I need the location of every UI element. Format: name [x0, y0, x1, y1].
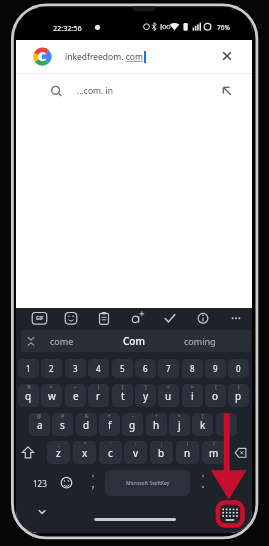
button[interactable]: x	[73, 441, 96, 464]
staticText: g	[129, 418, 136, 432]
button[interactable]: 4	[88, 359, 109, 378]
button[interactable]: r	[88, 384, 109, 407]
staticText: 9	[213, 363, 218, 374]
staticText: ]	[145, 384, 147, 390]
staticText: &	[85, 413, 89, 419]
button[interactable]	[60, 307, 82, 329]
button[interactable]: v	[124, 441, 147, 464]
button[interactable]: c	[99, 441, 122, 464]
button[interactable]: l	[216, 413, 237, 436]
button[interactable]: g	[122, 413, 143, 436]
button[interactable]: ...com. in	[16, 74, 252, 107]
staticText: *	[108, 413, 111, 419]
button[interactable]: 5	[112, 359, 133, 378]
staticText: Com	[123, 334, 145, 348]
button[interactable]: 9	[205, 359, 226, 378]
button[interactable]	[225, 307, 247, 329]
staticText: ^	[50, 384, 53, 390]
staticText: ;	[161, 441, 163, 447]
staticText: _	[58, 441, 60, 447]
button[interactable]	[192, 307, 214, 329]
button[interactable]: come	[36, 331, 88, 351]
button[interactable]: inkedfreedom. com	[16, 40, 252, 74]
staticText: !	[187, 441, 189, 447]
button[interactable]: Microsoft SwiftKey	[105, 470, 190, 496]
staticText: ~	[74, 384, 77, 390]
staticText: Microsoft SwiftKey	[126, 480, 170, 487]
staticText: c	[108, 446, 113, 460]
staticText: +	[155, 413, 158, 419]
button[interactable]: k	[192, 413, 213, 436]
button[interactable]	[221, 469, 245, 493]
button[interactable]: 1	[18, 359, 39, 378]
button[interactable]: 8	[182, 359, 203, 378]
button[interactable]: u	[158, 384, 179, 407]
button[interactable]	[33, 504, 51, 520]
staticText: %	[27, 384, 31, 390]
staticText: x	[82, 446, 88, 460]
staticText: <	[167, 384, 170, 390]
staticText: {	[215, 384, 217, 390]
button[interactable]: d	[76, 413, 97, 436]
staticText: f	[108, 418, 112, 432]
staticText: m	[209, 446, 219, 460]
button[interactable]: w	[41, 384, 62, 407]
staticText: 76%	[217, 23, 230, 32]
button[interactable]	[56, 471, 78, 495]
button[interactable]: 123	[27, 470, 53, 496]
button[interactable]: 6	[135, 359, 156, 378]
staticText: 123	[33, 478, 47, 489]
button[interactable]: t	[112, 384, 133, 407]
button[interactable]	[126, 307, 148, 329]
button[interactable]: m	[202, 441, 225, 464]
button[interactable]: o	[205, 384, 226, 407]
staticText: j	[178, 418, 181, 432]
staticText: "	[84, 441, 86, 447]
button[interactable]: coming	[172, 331, 228, 351]
staticText: inkedfreedom. com	[65, 51, 143, 63]
button[interactable]: f	[99, 413, 120, 436]
button[interactable]: q	[18, 384, 39, 407]
button[interactable]	[16, 441, 40, 465]
staticText: q	[25, 389, 32, 403]
button[interactable]: Com	[104, 331, 164, 351]
staticText: =	[178, 413, 181, 419]
button[interactable]: b	[150, 441, 173, 464]
button[interactable]	[217, 501, 243, 527]
staticText: '	[110, 441, 112, 447]
button[interactable]: GIF	[30, 308, 50, 328]
button[interactable]: j	[169, 413, 190, 436]
staticText: )	[226, 413, 228, 419]
button[interactable]: 3	[65, 359, 86, 378]
button[interactable]	[229, 441, 252, 465]
staticText: :	[135, 441, 137, 447]
staticText: @	[37, 413, 42, 419]
button[interactable]: e	[65, 384, 86, 407]
button[interactable]: 0	[228, 359, 249, 378]
button[interactable]: n	[176, 441, 199, 464]
staticText: 1	[26, 363, 31, 374]
staticText: 8	[190, 363, 195, 374]
button[interactable]: p	[228, 384, 249, 407]
button[interactable]: z	[47, 441, 70, 464]
button[interactable]: i	[182, 384, 203, 407]
staticText: 3	[73, 363, 78, 374]
button[interactable]	[159, 307, 181, 329]
button[interactable]	[93, 307, 115, 329]
staticText: i	[191, 389, 194, 403]
button[interactable]: y	[135, 384, 156, 407]
button[interactable]: s	[52, 413, 73, 436]
staticText: d	[83, 418, 90, 432]
staticText: 2	[49, 363, 54, 374]
staticText: n	[184, 446, 191, 460]
staticText: GIF	[36, 315, 44, 321]
staticText: y	[143, 389, 149, 403]
button[interactable]: 2	[41, 359, 62, 378]
button[interactable]: h	[146, 413, 167, 436]
staticText: u	[165, 389, 172, 403]
button[interactable]: 7	[158, 359, 179, 378]
staticText: v	[133, 446, 139, 460]
staticText: a	[37, 418, 43, 432]
button[interactable]: a	[29, 413, 50, 436]
